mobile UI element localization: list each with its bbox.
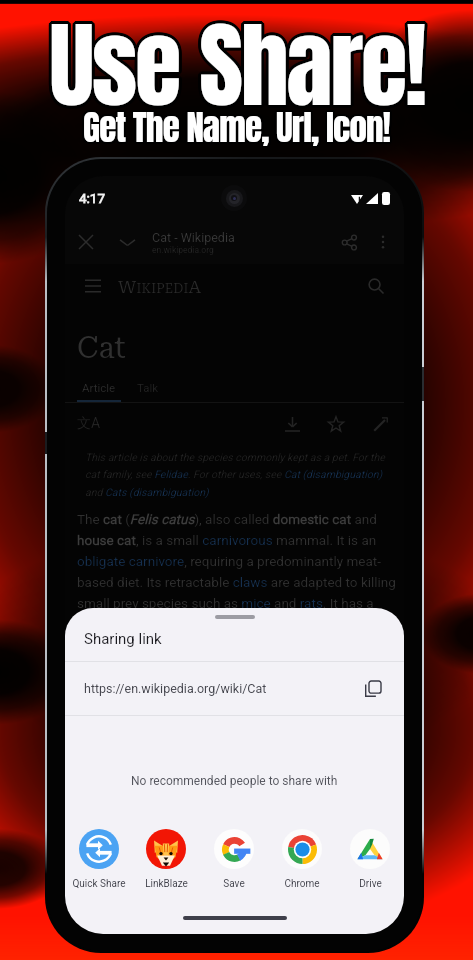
- staticText: Cat - Wikipedia: [152, 230, 235, 245]
- staticText: Get The Name, Url, Icon!: [84, 102, 391, 155]
- staticText: Get The Name, Url, Icon!: [82, 102, 389, 155]
- staticText: Get The Name, Url, Icon!: [81, 101, 388, 154]
- staticText: Quick Share: [72, 878, 126, 890]
- staticText: Use Share!: [46, 0, 422, 135]
- button[interactable]: Close: [71, 227, 101, 257]
- staticText: Get The Name, Url, Icon!: [83, 101, 390, 154]
- button[interactable]: Watch: [324, 412, 348, 436]
- staticText: 文A: [77, 415, 101, 433]
- staticText: en.wikipedia.org: [152, 245, 214, 255]
- staticText: Get The Name, Url, Icon!: [84, 99, 391, 152]
- staticText: Use Share!: [51, 0, 427, 134]
- staticText: Get The Name, Url, Icon!: [83, 99, 390, 152]
- staticText: Use Share!: [48, 0, 424, 139]
- staticText: Get The Name, Url, Icon!: [84, 103, 391, 156]
- staticText: Use Share!: [52, 0, 428, 136]
- staticText: Article: [82, 381, 116, 394]
- staticText: Use Share!: [49, 0, 425, 136]
- button[interactable]: Search: [361, 271, 391, 301]
- staticText: Get The Name, Url, Icon!: [82, 100, 389, 153]
- staticText: Cat: [77, 330, 126, 365]
- button[interactable]: https://en.wikipedia.org/wiki/Cat: [65, 662, 404, 715]
- staticText: Use Share!: [52, 0, 428, 137]
- button[interactable]: Share: [334, 227, 364, 257]
- staticText: Get The Name, Url, Icon!: [81, 102, 388, 155]
- button[interactable]: More options: [370, 229, 396, 255]
- button[interactable]: Save: [200, 829, 268, 890]
- button[interactable]: Edit: [368, 412, 392, 436]
- staticText: 4:17: [79, 190, 106, 206]
- staticText: Use Share!: [50, 0, 426, 139]
- staticText: Use Share!: [51, 0, 427, 138]
- staticText: Get The Name, Url, Icon!: [84, 100, 391, 153]
- staticText: Use Share!: [52, 0, 428, 135]
- button[interactable]: Download: [280, 412, 304, 436]
- button[interactable]: Chrome: [268, 829, 336, 890]
- staticText: Get The Name, Url, Icon!: [85, 100, 392, 153]
- staticText: Chrome: [284, 878, 320, 890]
- staticText: Use Share!: [49, 0, 425, 133]
- staticText: Use Share!: [46, 0, 422, 136]
- staticText: This article is about the species common…: [85, 451, 398, 498]
- staticText: Get The Name, Url, Icon!: [85, 102, 392, 155]
- staticText: Use Share!: [47, 0, 423, 134]
- staticText: https://en.wikipedia.org/wiki/Cat: [84, 681, 267, 696]
- staticText: Use Share!: [48, 0, 424, 133]
- staticText: The cat (Felis catus), also called domes…: [77, 511, 396, 611]
- button[interactable]: Expand: [112, 227, 142, 257]
- staticText: No recommended people to share with: [131, 774, 338, 788]
- staticText: Save: [223, 878, 245, 890]
- staticText: Use Share!: [46, 0, 422, 137]
- button[interactable]: Drive: [336, 829, 404, 890]
- staticText: Use Share!: [50, 0, 426, 133]
- staticText: Use Share!: [49, 0, 425, 139]
- staticText: Get The Name, Url, Icon!: [82, 99, 389, 152]
- staticText: Get The Name, Url, Icon!: [81, 100, 388, 153]
- staticText: Get The Name, Url, Icon!: [82, 103, 389, 156]
- button[interactable]: Copy link: [360, 676, 386, 702]
- button[interactable]: Menu: [78, 271, 108, 301]
- button[interactable]: Quick Share: [65, 829, 132, 890]
- staticText: Drive: [359, 878, 382, 890]
- staticText: WIKIPEDIA: [118, 276, 202, 297]
- button[interactable]: LinkBlaze: [132, 829, 200, 890]
- staticText: Get The Name, Url, Icon!: [85, 101, 392, 154]
- staticText: Get The Name, Url, Icon!: [83, 103, 390, 156]
- staticText: LinkBlaze: [145, 878, 188, 890]
- staticText: Sharing link: [84, 630, 162, 648]
- staticText: Talk: [137, 381, 159, 394]
- staticText: Use Share!: [47, 0, 423, 138]
